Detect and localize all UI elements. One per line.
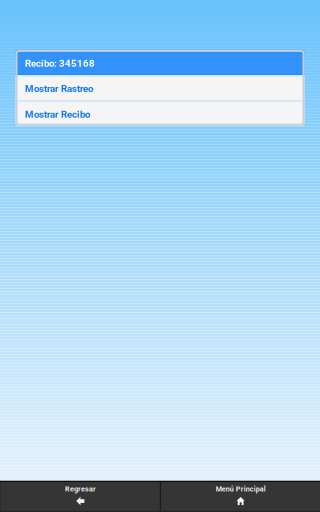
staticText: Regresar	[65, 485, 96, 493]
staticText: Mostrar Rastreo	[25, 83, 93, 94]
button[interactable]: Mostrar Recibo	[15, 102, 304, 126]
button[interactable]: Menú Principal	[161, 482, 320, 512]
button[interactable]: Mostrar Rastreo	[15, 76, 304, 100]
staticText: Menú Principal	[216, 485, 266, 493]
staticText: Recibo: 345168	[25, 58, 95, 69]
staticText: Mostrar Recibo	[25, 109, 90, 120]
button[interactable]: Regresar	[1, 482, 160, 512]
